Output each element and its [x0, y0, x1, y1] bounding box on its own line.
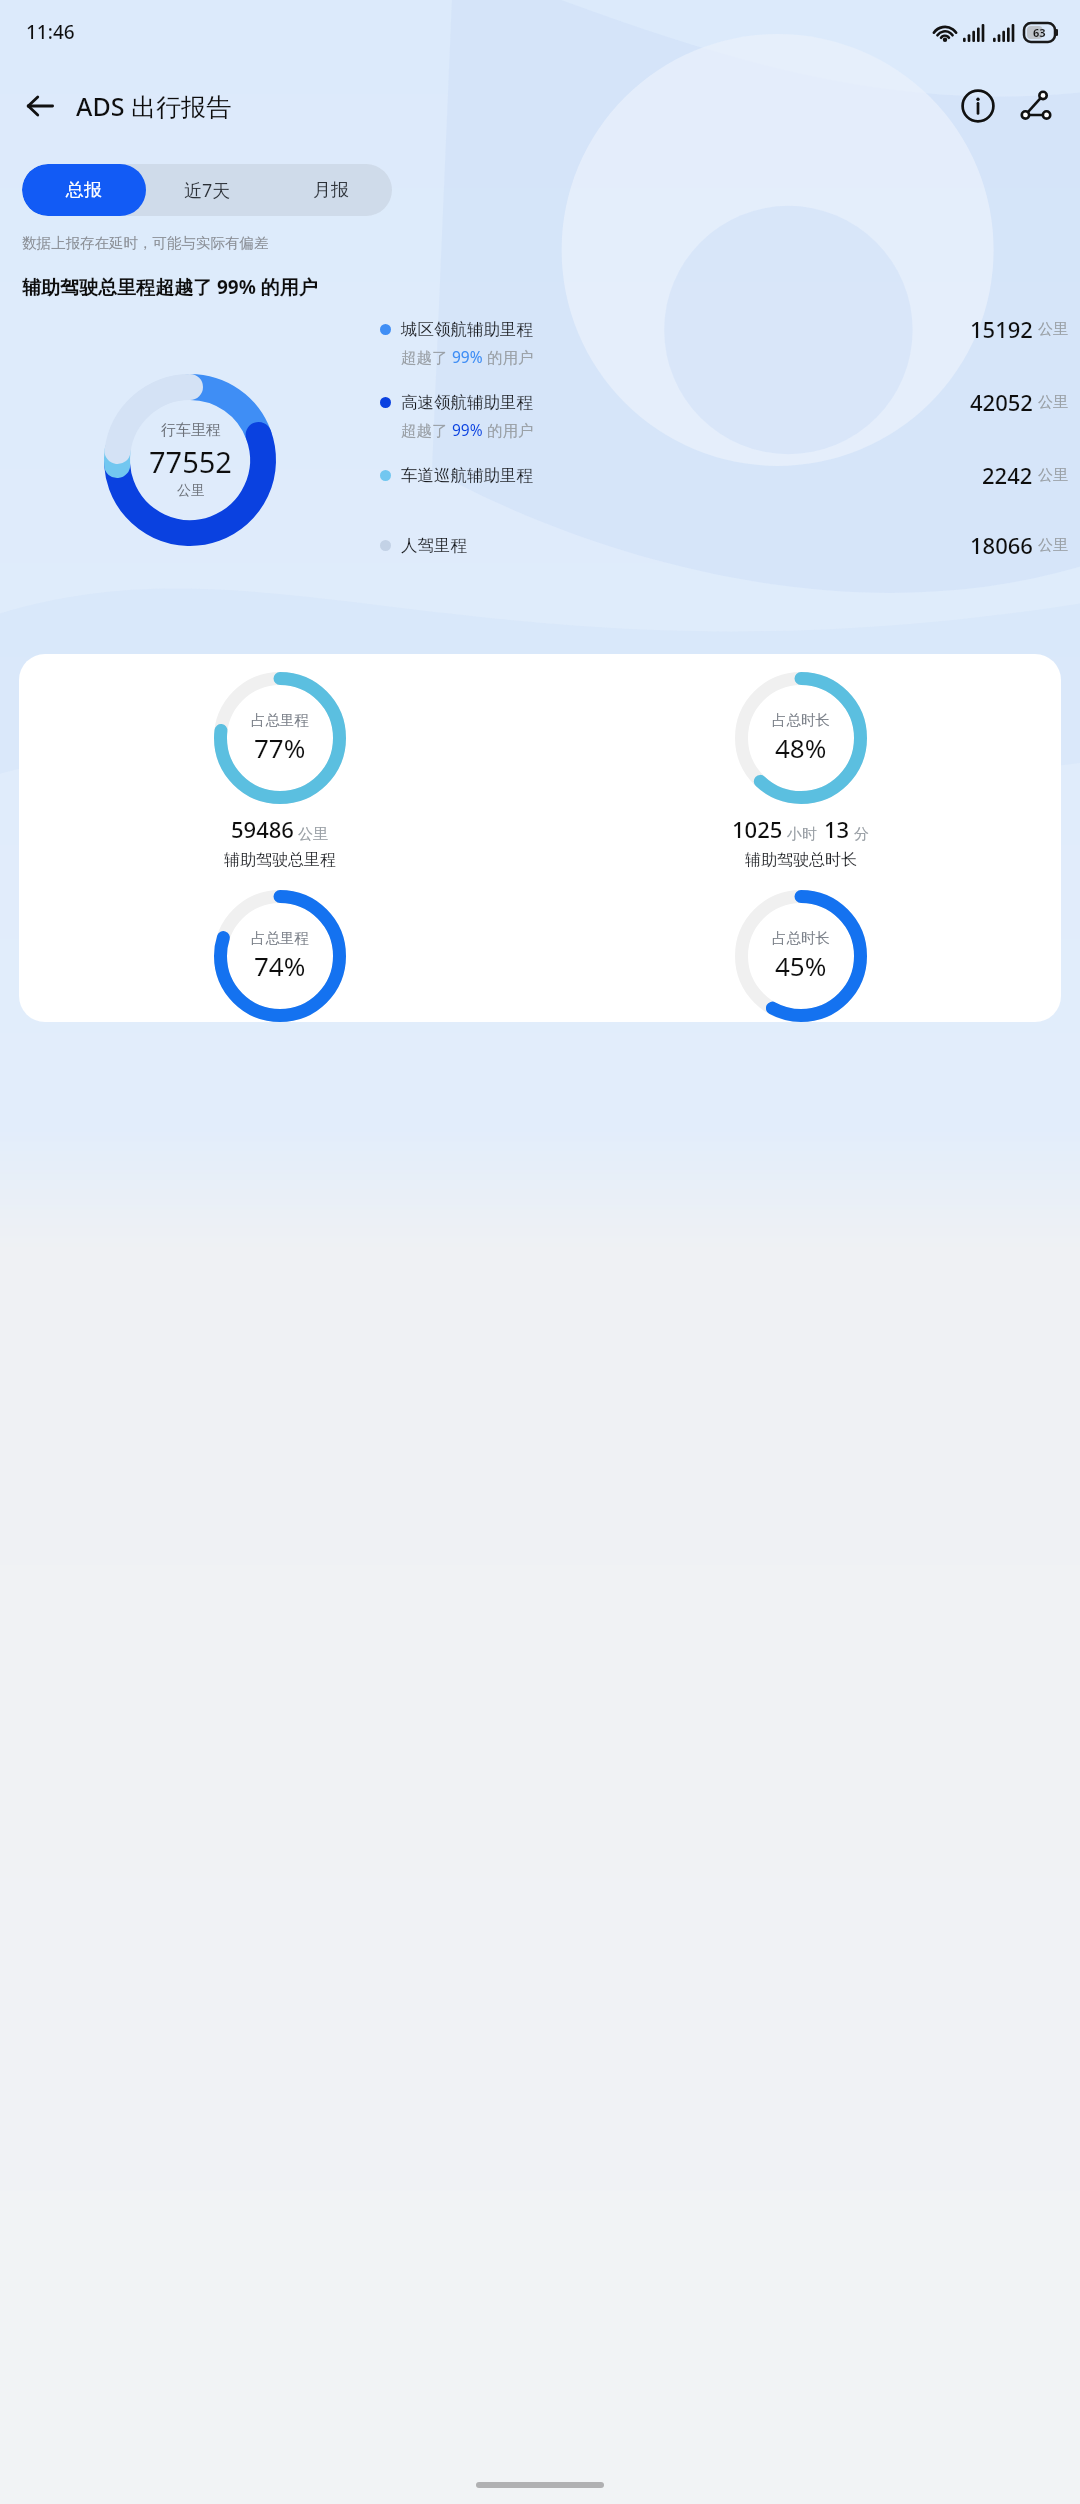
- staticText: 48%: [775, 730, 827, 765]
- staticText: 高速领航辅助里程: [401, 392, 533, 413]
- button[interactable]: 城区领航辅助里程: [380, 314, 1068, 367]
- staticText: 小时: [787, 825, 817, 844]
- staticText: 数据上报存在延时，可能与实际有偏差: [22, 234, 269, 252]
- staticText: 占总里程: [251, 929, 309, 947]
- button[interactable]: 车道巡航辅助里程: [380, 460, 1068, 490]
- staticText: 占总时长: [772, 929, 830, 947]
- staticText: 的用户: [483, 346, 534, 367]
- staticText: 77552: [149, 442, 232, 481]
- staticText: 的用户: [483, 419, 534, 440]
- staticText: 分: [854, 825, 869, 844]
- staticText: 13: [824, 814, 850, 844]
- staticText: 公里: [1038, 536, 1068, 555]
- button[interactable]: 总报: [22, 164, 146, 216]
- staticText: 辅助驾驶总里程: [224, 850, 336, 870]
- staticText: 18066: [970, 530, 1033, 560]
- button[interactable]: 近7天: [146, 164, 269, 216]
- staticText: 近7天: [184, 178, 231, 203]
- staticText: 99%: [452, 346, 483, 367]
- staticText: 2242: [982, 460, 1033, 490]
- staticText: 超越了: [401, 346, 452, 367]
- button[interactable]: 占总里程: [19, 672, 540, 870]
- staticText: 行车里程: [161, 421, 221, 440]
- staticText: 占总里程: [251, 711, 309, 729]
- staticText: 77%: [254, 730, 306, 765]
- button[interactable]: 高速领航辅助里程: [380, 387, 1068, 440]
- button[interactable]: 占总里程: [19, 890, 540, 1022]
- button[interactable]: 分享: [1010, 80, 1062, 132]
- staticText: 公里: [1038, 393, 1068, 412]
- staticText: 11:46: [26, 19, 75, 45]
- staticText: 公里: [298, 825, 328, 844]
- staticText: 公里: [177, 482, 205, 500]
- staticText: 公里: [1038, 466, 1068, 485]
- staticText: 总报: [66, 179, 102, 202]
- staticText: 74%: [254, 948, 306, 983]
- staticText: 公里: [1038, 320, 1068, 339]
- staticText: 1025: [732, 814, 783, 844]
- staticText: 辅助驾驶总时长: [745, 850, 857, 870]
- staticText: 59486: [231, 814, 294, 844]
- staticText: 人驾里程: [401, 535, 467, 556]
- staticText: 42052: [970, 387, 1033, 417]
- button[interactable]: 占总时长: [540, 890, 1061, 1022]
- button[interactable]: 人驾里程: [380, 530, 1068, 560]
- staticText: 车道巡航辅助里程: [401, 465, 533, 486]
- staticText: 月报: [313, 179, 349, 202]
- staticText: 占总时长: [772, 711, 830, 729]
- staticText: 45%: [775, 948, 827, 983]
- staticText: 63: [1033, 25, 1046, 40]
- staticText: 城区领航辅助里程: [401, 319, 533, 340]
- button[interactable]: 占总时长: [540, 672, 1061, 870]
- staticText: 辅助驾驶总里程超越了 99% 的用户: [22, 274, 318, 300]
- button[interactable]: 月报: [269, 164, 392, 216]
- staticText: 15192: [970, 314, 1033, 344]
- staticText: ADS 出行报告: [76, 89, 231, 123]
- staticText: 超越了: [401, 419, 452, 440]
- button[interactable]: 说明: [952, 80, 1004, 132]
- button[interactable]: 返回: [14, 80, 66, 132]
- staticText: 99%: [452, 419, 483, 440]
